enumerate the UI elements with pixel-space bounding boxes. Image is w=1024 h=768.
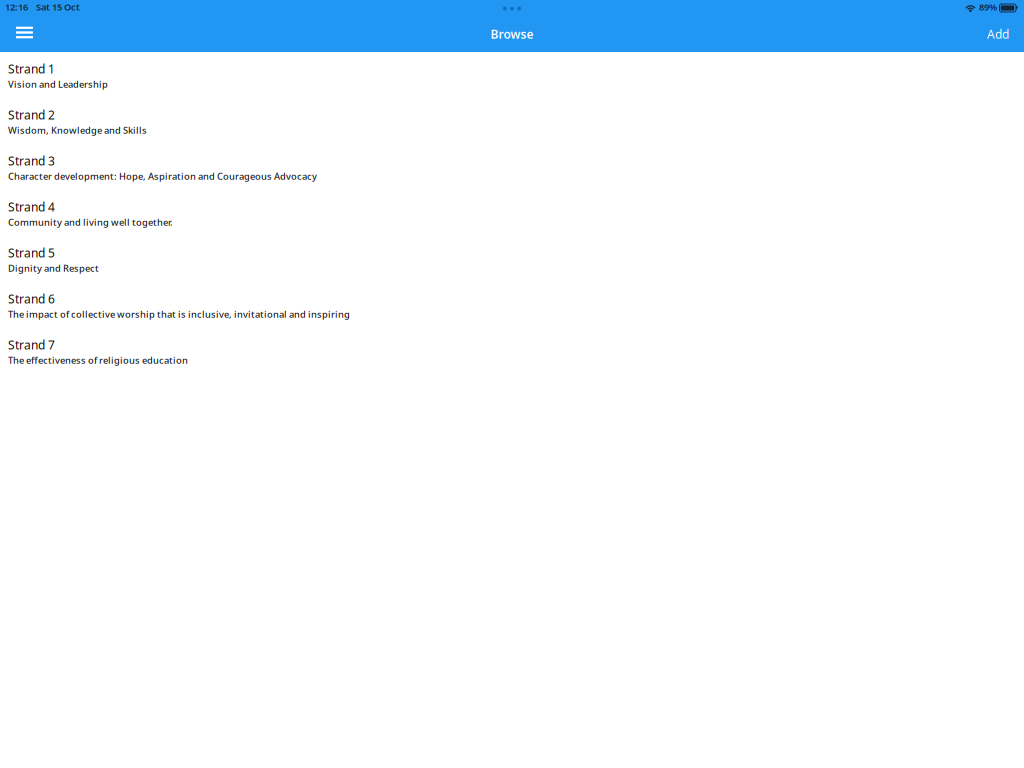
staticText: Dignity and Respect: [8, 262, 99, 274]
button[interactable]: Strand 6: [0, 282, 1024, 328]
staticText: Browse: [490, 26, 533, 42]
staticText: Community and living well together.: [8, 216, 173, 228]
staticText: 89%: [979, 1, 997, 13]
button[interactable]: Strand 5: [0, 236, 1024, 282]
button[interactable]: Strand 1: [0, 52, 1024, 98]
staticText: Strand 3: [8, 153, 55, 169]
button[interactable]: Add: [972, 18, 1024, 52]
staticText: Wisdom, Knowledge and Skills: [8, 124, 147, 136]
staticText: Strand 6: [8, 291, 55, 307]
staticText: The impact of collective worship that is…: [8, 308, 350, 320]
staticText: Strand 5: [8, 245, 55, 261]
staticText: Vision and Leadership: [8, 78, 108, 90]
staticText: The effectiveness of religious education: [8, 354, 188, 366]
button[interactable]: Strand 4: [0, 190, 1024, 236]
button[interactable]: Strand 3: [0, 144, 1024, 190]
staticText: Strand 7: [8, 337, 55, 353]
staticText: Strand 1: [8, 61, 55, 77]
button[interactable]: Strand 2: [0, 98, 1024, 144]
staticText: Strand 4: [8, 199, 55, 215]
staticText: Strand 2: [8, 107, 55, 123]
button[interactable]: Strand 7: [0, 328, 1024, 374]
staticText: Add: [987, 26, 1009, 42]
button[interactable]: Menu: [0, 18, 47, 52]
staticText: Character development: Hope, Aspiration …: [8, 170, 317, 182]
staticText: Sat 15 Oct: [36, 1, 80, 13]
staticText: 12:16: [5, 1, 28, 13]
